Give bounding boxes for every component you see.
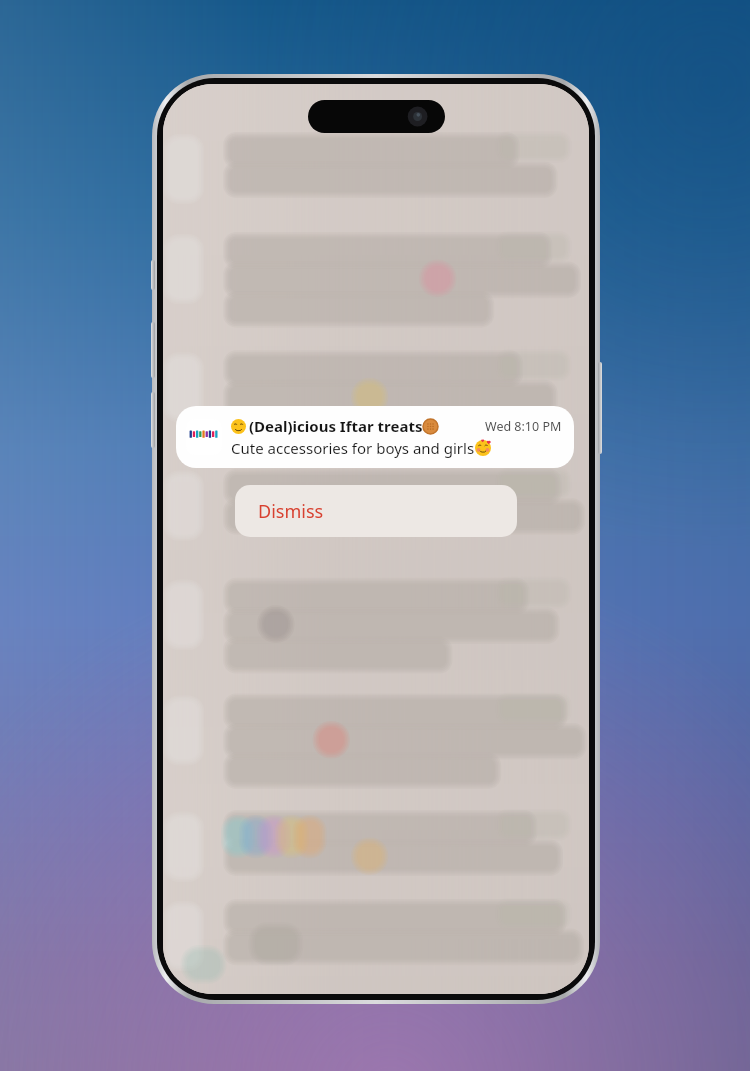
staticText: Cute accessories for boys and girls <box>231 438 475 458</box>
staticText: (Deal)icious Iftar treats <box>249 416 423 436</box>
other: Power <box>598 362 602 454</box>
other: Volume up <box>151 322 155 378</box>
button[interactable]: (Deal)icious Iftar treats <box>176 406 574 468</box>
staticText: Dismiss <box>258 499 324 524</box>
other: Volume down <box>151 392 155 448</box>
other: Silent switch <box>151 260 155 290</box>
staticText: Wed 8:10 PM <box>485 418 562 435</box>
button[interactable]: Dismiss <box>235 485 517 537</box>
